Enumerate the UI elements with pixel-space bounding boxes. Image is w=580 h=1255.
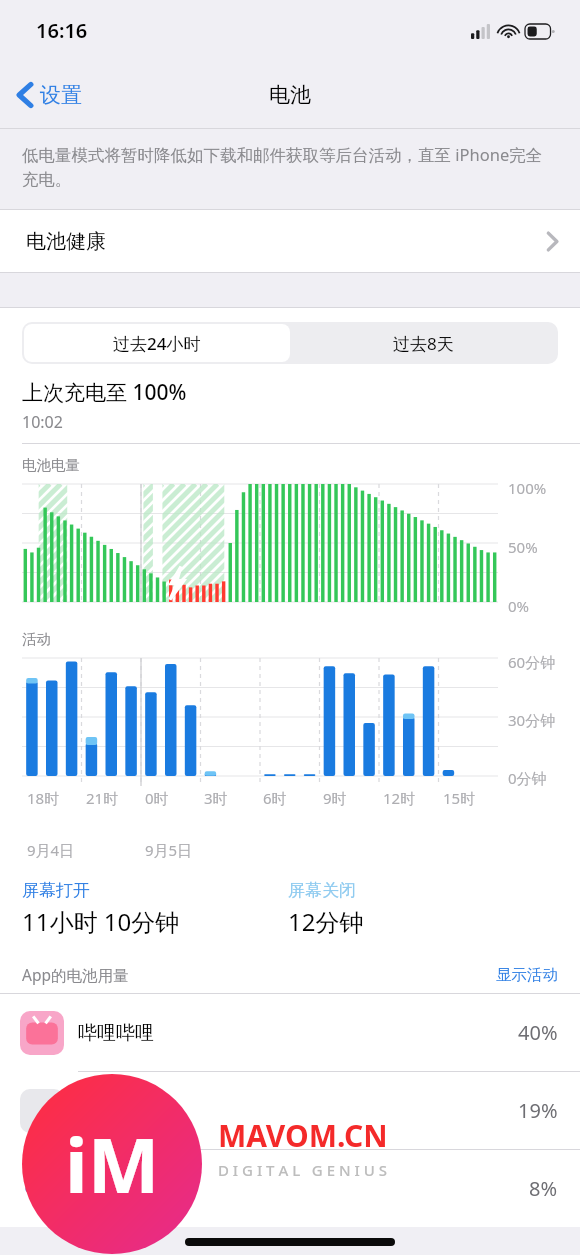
- button[interactable]: 哔哩哔哩: [0, 994, 580, 1071]
- staticText: 9月4日: [27, 840, 75, 860]
- staticText: 11小时 10分钟: [22, 905, 180, 938]
- staticText: 低电量模式将暂时降低如下载和邮件获取等后台活动，直至 iPhone完全充电。: [22, 143, 556, 190]
- staticText: 50%: [508, 537, 538, 557]
- staticText: 屏幕关闭: [288, 880, 356, 901]
- staticText: 16:16: [36, 17, 88, 44]
- staticText: 10:02: [22, 411, 63, 433]
- staticText: 活动: [22, 630, 51, 648]
- staticText: MAVOM.CN: [218, 1115, 388, 1156]
- staticText: 设置: [40, 82, 82, 108]
- staticText: 30分钟: [508, 710, 556, 730]
- button[interactable]: 百度: [0, 1150, 580, 1227]
- staticText: 屏幕打开: [22, 880, 90, 901]
- button[interactable]: 过去8天: [290, 324, 556, 362]
- staticText: 15时: [443, 788, 476, 808]
- button[interactable]: 过去24小时: [24, 324, 290, 362]
- button[interactable]: 版: [0, 1072, 580, 1149]
- staticText: 40%: [518, 1019, 558, 1046]
- staticText: 100%: [508, 478, 547, 498]
- staticText: 百度: [78, 1177, 116, 1201]
- staticText: 过去8天: [393, 332, 454, 355]
- staticText: 电池电量: [22, 456, 80, 474]
- staticText: 12时: [383, 788, 416, 808]
- staticText: 0%: [508, 596, 530, 616]
- staticText: 8%: [529, 1175, 558, 1202]
- staticText: 19%: [518, 1097, 558, 1124]
- button[interactable]: 显示活动: [496, 965, 558, 985]
- staticText: D I G I T A L G E N I U S: [218, 1160, 387, 1180]
- staticText: 上次充电至 100%: [22, 378, 187, 407]
- staticText: 12分钟: [288, 905, 364, 938]
- staticText: 过去24小时: [113, 332, 201, 355]
- staticText: 6时: [263, 788, 287, 808]
- staticText: 0时: [145, 788, 169, 808]
- button[interactable]: 设置: [12, 76, 88, 114]
- staticText: 60分钟: [508, 652, 556, 672]
- staticText: 9月5日: [145, 840, 193, 860]
- staticText: 18时: [27, 788, 60, 808]
- staticText: 哔哩哔哩: [78, 1021, 154, 1045]
- staticText: 显示活动: [496, 965, 558, 985]
- staticText: 21时: [86, 788, 119, 808]
- staticText: 电池: [269, 82, 311, 108]
- staticText: 0分钟: [508, 768, 547, 788]
- button[interactable]: 电池健康: [0, 210, 580, 272]
- staticText: 9时: [323, 788, 347, 808]
- staticText: 3时: [204, 788, 228, 808]
- staticText: iM: [65, 1112, 160, 1216]
- staticText: App的电池用量: [22, 964, 129, 985]
- staticText: 电池健康: [26, 229, 106, 254]
